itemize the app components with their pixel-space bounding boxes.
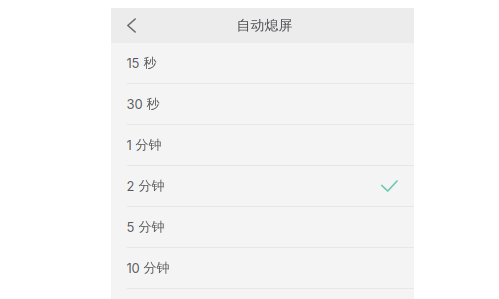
staticText: 30 秒: [126, 96, 159, 112]
staticText: 15 秒: [126, 55, 156, 71]
button[interactable]: 2 分钟: [111, 166, 414, 206]
button[interactable]: 30 秒: [111, 84, 414, 124]
button[interactable]: 10 分钟: [111, 248, 414, 288]
button[interactable]: 1 分钟: [111, 125, 414, 165]
button[interactable]: 15 秒: [111, 43, 414, 83]
staticText: 5 分钟: [126, 219, 164, 235]
staticText: 1 分钟: [126, 137, 161, 153]
staticText: 自动熄屏: [236, 17, 292, 34]
staticText: 2 分钟: [126, 178, 164, 194]
button[interactable]: Back: [111, 8, 153, 43]
button[interactable]: 5 分钟: [111, 207, 414, 247]
staticText: 10 分钟: [126, 260, 169, 276]
